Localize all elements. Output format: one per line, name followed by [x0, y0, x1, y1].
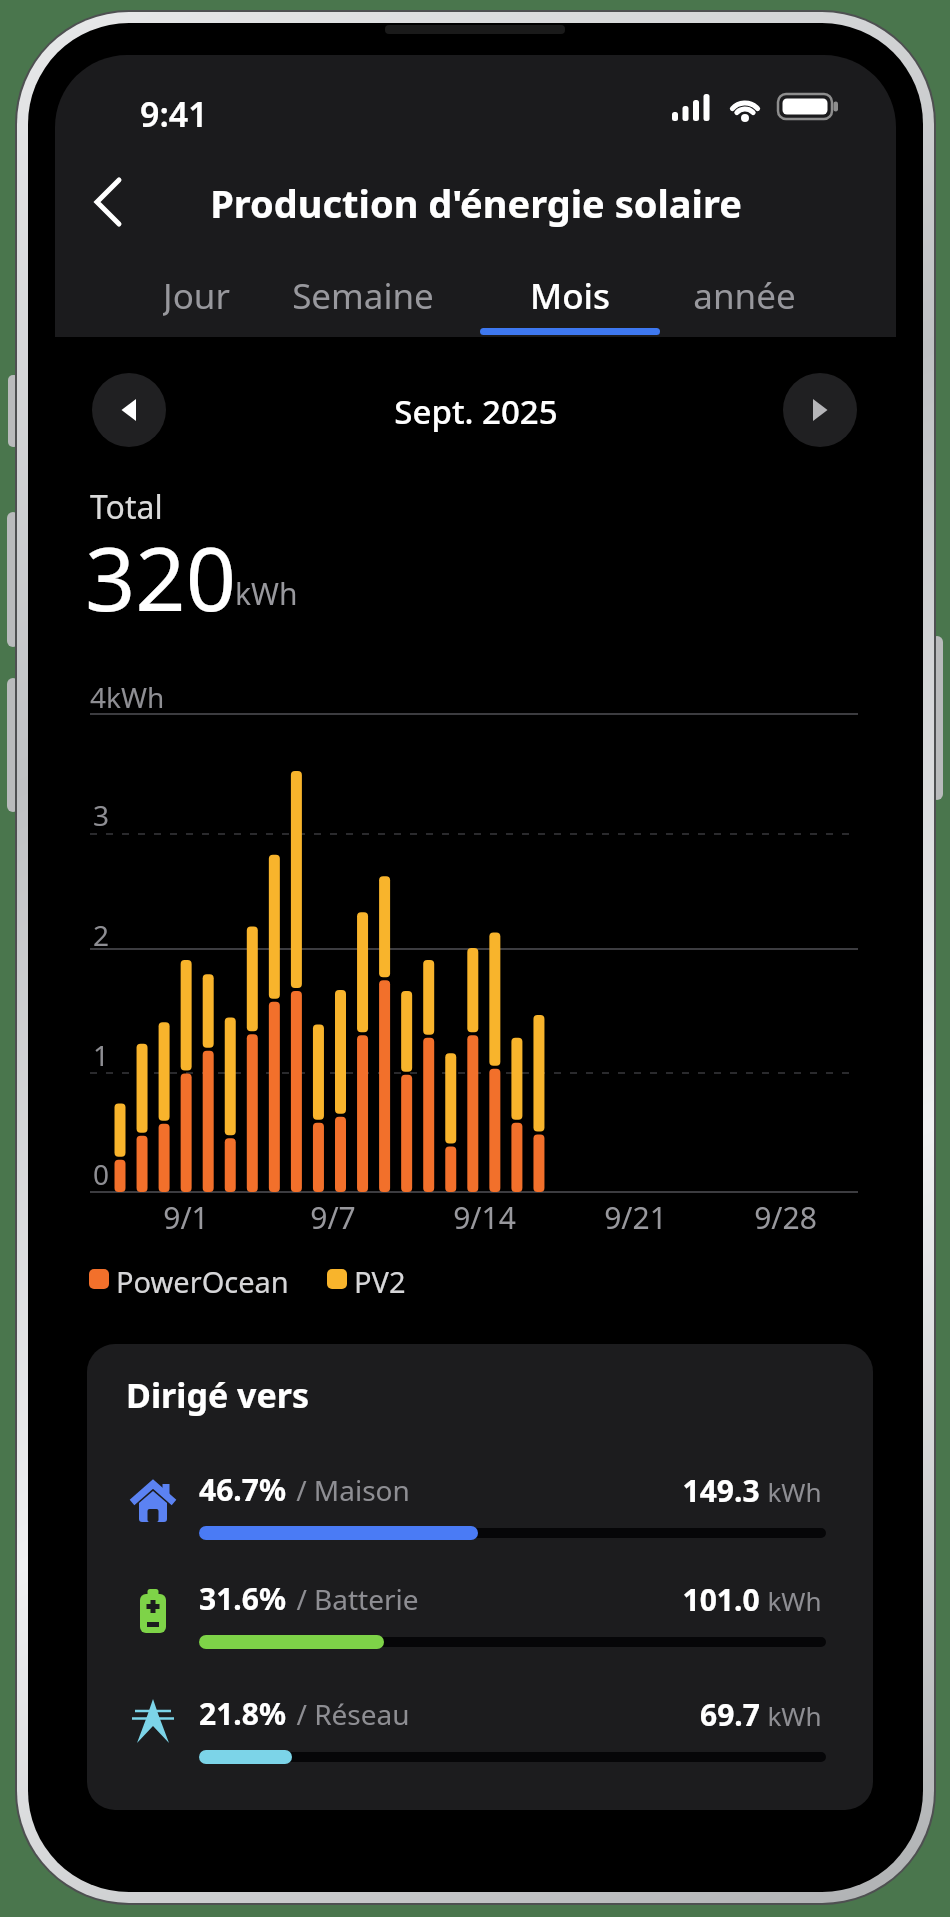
- staticText: 4kWh: [90, 678, 165, 716]
- staticText: 2: [93, 916, 110, 954]
- button[interactable]: Mois: [480, 272, 660, 318]
- staticText: / Réseau: [296, 1695, 410, 1733]
- staticText: Total: [90, 485, 163, 529]
- staticText: 1: [93, 1036, 110, 1074]
- staticText: / Maison: [296, 1471, 410, 1509]
- staticText: 9/1: [163, 1197, 209, 1233]
- staticText: / Batterie: [296, 1580, 419, 1618]
- staticText: Dirigé vers: [126, 1372, 310, 1418]
- staticText: Production d'énergie solaire: [210, 177, 742, 229]
- staticText: 149.3: [682, 1470, 760, 1511]
- button[interactable]: [80, 167, 140, 237]
- staticText: 69.7: [700, 1694, 760, 1735]
- staticText: 9:41: [140, 91, 208, 137]
- staticText: 9/14: [453, 1197, 516, 1233]
- button[interactable]: [783, 373, 857, 447]
- staticText: kWh: [235, 573, 298, 614]
- staticText: kWh: [767, 1698, 822, 1733]
- staticText: 31.6%: [199, 1578, 286, 1619]
- staticText: 21.8%: [199, 1693, 286, 1734]
- button[interactable]: Semaine: [273, 272, 453, 318]
- staticText: 101.0: [682, 1579, 760, 1620]
- staticText: PV2: [354, 1262, 406, 1301]
- staticText: 46.7%: [199, 1469, 286, 1510]
- staticText: 3: [93, 796, 110, 834]
- button[interactable]: [92, 373, 166, 447]
- staticText: Semaine: [292, 272, 434, 318]
- staticText: kWh: [767, 1583, 822, 1618]
- staticText: 320: [85, 517, 237, 637]
- staticText: PowerOcean: [116, 1262, 289, 1301]
- staticText: 9/7: [310, 1197, 356, 1233]
- staticText: Mois: [530, 272, 610, 318]
- staticText: 9/28: [754, 1197, 817, 1233]
- staticText: Jour: [163, 272, 230, 318]
- button[interactable]: Jour: [106, 272, 286, 318]
- staticText: 0: [93, 1155, 110, 1193]
- button[interactable]: année: [654, 272, 834, 318]
- staticText: 9/21: [604, 1197, 667, 1233]
- staticText: année: [693, 272, 796, 318]
- staticText: kWh: [767, 1474, 822, 1509]
- staticText: Sept. 2025: [394, 389, 558, 434]
